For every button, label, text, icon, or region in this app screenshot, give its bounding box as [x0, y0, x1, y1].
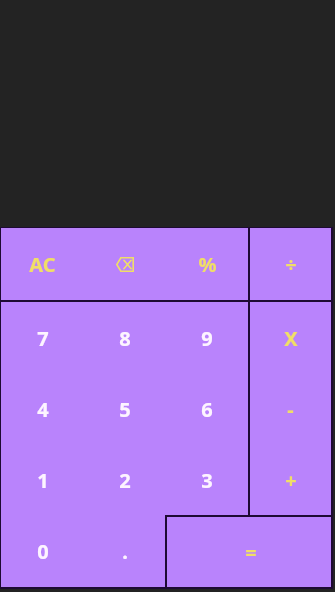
staticText: 9	[201, 325, 213, 352]
staticText: 4	[37, 396, 49, 423]
button[interactable]: =	[167, 517, 331, 587]
button[interactable]: 1	[1, 445, 84, 516]
staticText: -	[287, 396, 294, 423]
button[interactable]: +	[250, 445, 331, 516]
button[interactable]: -	[250, 374, 331, 445]
staticText: 3	[201, 467, 213, 494]
button[interactable]: 4	[1, 374, 84, 445]
button[interactable]: 0	[1, 516, 84, 587]
button[interactable]: 3	[166, 445, 248, 516]
button[interactable]: 5	[84, 374, 166, 445]
staticText: 0	[37, 538, 49, 565]
button[interactable]: 7	[1, 302, 84, 374]
staticText: ÷	[285, 251, 297, 278]
staticText: %	[198, 251, 217, 278]
staticText: 8	[119, 325, 131, 352]
staticText: 2	[119, 467, 131, 494]
button[interactable]: AC	[1, 228, 84, 300]
button[interactable]: 9	[166, 302, 248, 374]
staticText: =	[245, 539, 257, 566]
button[interactable]: 2	[84, 445, 166, 516]
staticText: 5	[119, 396, 131, 423]
button[interactable]: 6	[166, 374, 248, 445]
button[interactable]: X	[250, 302, 331, 374]
button[interactable]: 8	[84, 302, 166, 374]
staticText: 1	[37, 467, 49, 494]
staticText: 6	[201, 396, 213, 423]
button[interactable]: .	[84, 516, 166, 587]
staticText: +	[285, 467, 297, 494]
button[interactable]: %	[166, 228, 248, 300]
staticText: AC	[29, 251, 56, 278]
button[interactable]: Backspace	[84, 228, 166, 300]
button[interactable]: ÷	[250, 228, 331, 300]
staticText: 7	[37, 325, 49, 352]
staticText: .	[122, 538, 128, 565]
staticText: X	[284, 325, 298, 352]
